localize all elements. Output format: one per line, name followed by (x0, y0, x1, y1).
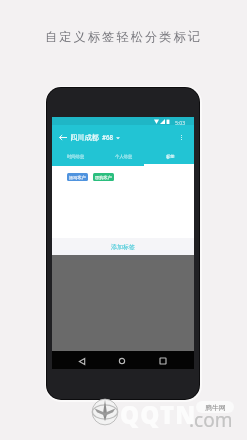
staticText: 5:03 (175, 119, 186, 126)
staticText: 添加标签 (111, 243, 135, 251)
staticText: 时间信息 (67, 154, 85, 159)
button[interactable]: Home (114, 353, 130, 369)
staticText: 四川成都 (70, 133, 99, 142)
button[interactable]: 个人信息 (100, 148, 147, 164)
button[interactable]: 时间信息 (52, 148, 100, 164)
button[interactable]: Back (56, 131, 69, 144)
button[interactable]: 标签 (147, 148, 194, 164)
staticText: 旅游客户 (69, 175, 86, 180)
staticText: 个人信息 (115, 154, 133, 159)
button[interactable]: 团购客户 (93, 173, 114, 181)
button[interactable]: Back (74, 353, 90, 369)
button[interactable]: Recents (155, 353, 171, 369)
staticText: 腾牛网 (205, 403, 226, 412)
staticText: 团购客户 (95, 175, 112, 180)
button[interactable]: More options (175, 131, 188, 144)
button[interactable]: 旅游客户 (67, 173, 88, 181)
staticText: 自定义标签轻松分类标记 (0, 29, 247, 44)
staticText: .com (189, 407, 233, 433)
staticText: QQTN (120, 398, 197, 431)
button[interactable]: 添加标签 (52, 238, 194, 255)
staticText: #68 (102, 133, 114, 141)
staticText: 标签 (166, 154, 175, 159)
